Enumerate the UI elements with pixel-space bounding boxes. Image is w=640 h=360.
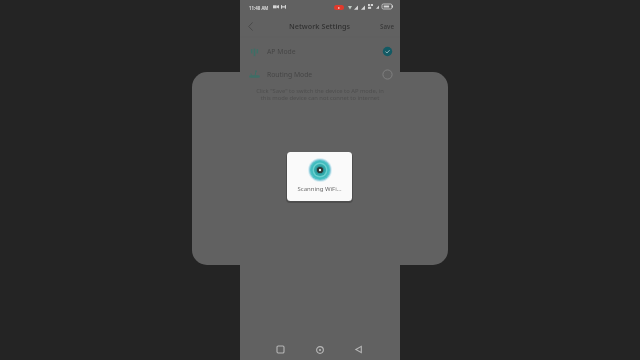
staticText: AP Mode [267, 47, 296, 56]
button[interactable]: Home [312, 342, 327, 357]
button[interactable]: Recent apps [273, 342, 288, 357]
staticText: 11:48 AM [249, 5, 269, 11]
button[interactable]: Routing Mode [240, 63, 400, 86]
staticText: Routing Mode [267, 70, 313, 79]
button[interactable]: Back [242, 18, 258, 34]
button[interactable]: AP Mode [240, 40, 400, 63]
staticText: Click "Save" to switch the device to AP … [240, 87, 400, 102]
button[interactable]: Back [351, 342, 366, 357]
button[interactable]: Save [376, 22, 400, 30]
staticText: Save [380, 22, 395, 30]
staticText: Scanning WiFi... [287, 185, 352, 193]
staticText: Network Settings [289, 21, 351, 31]
